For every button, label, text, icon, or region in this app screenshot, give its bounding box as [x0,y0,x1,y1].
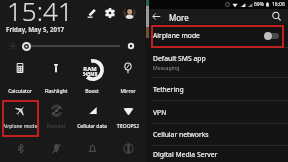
button[interactable]: TROOPS2 [110,102,146,134]
staticText: Messaging [153,64,180,71]
button[interactable]: Account [123,6,136,19]
staticText: Airplane mode [153,31,200,40]
button[interactable]: Cellular data [74,102,110,134]
button[interactable]: Edit [87,8,97,18]
staticText: 545MB [79,71,101,77]
staticText: Hotspot [38,123,74,130]
button[interactable]: VPN [145,101,288,123]
button[interactable]: Default SMS app [145,48,288,77]
button[interactable]: Airplane mode [2,102,38,134]
button[interactable]: Mirror [110,59,146,99]
staticText: More [169,12,189,23]
button[interactable]: Back [151,11,162,22]
button[interactable]: Calculator [2,59,38,99]
button[interactable]: Cellular networks [145,124,288,145]
button[interactable]: Search [271,11,282,22]
staticText: 16:06 [272,1,285,8]
staticText: Tethering [153,85,184,94]
staticText: Boost [74,88,110,95]
button[interactable]: Tethering [145,78,288,100]
staticText: TROOPS2 [110,123,146,130]
button[interactable]: Location off [38,140,74,158]
button[interactable]: Settings [105,8,115,18]
staticText: Cellular networks [153,130,209,139]
button[interactable]: Bluetooth off [2,140,38,158]
staticText: RAM [79,65,101,73]
staticText: Calculator [2,88,38,95]
button[interactable]: Airplane mode [145,24,288,47]
button[interactable]: Contrast [110,140,146,158]
button[interactable]: Flashlight [38,59,74,99]
staticText: Airplane mode [2,123,38,130]
staticText: Digital Media Server [153,150,218,159]
button[interactable]: Hotspot [38,102,74,134]
staticText: VPN [153,108,167,117]
staticText: Mirror [110,88,146,95]
button[interactable]: Digital Media Server [145,146,288,162]
staticText: 15:41 [7,0,73,28]
button[interactable] [74,59,110,99]
staticText: Default SMS app [153,54,206,63]
staticText: Cellular data [74,123,110,130]
staticText: Flashlight [38,88,74,95]
button[interactable]: Do not disturb [74,140,110,158]
staticText: Friday, May 5, 2017 [6,25,65,33]
staticText: 69% [254,1,264,8]
